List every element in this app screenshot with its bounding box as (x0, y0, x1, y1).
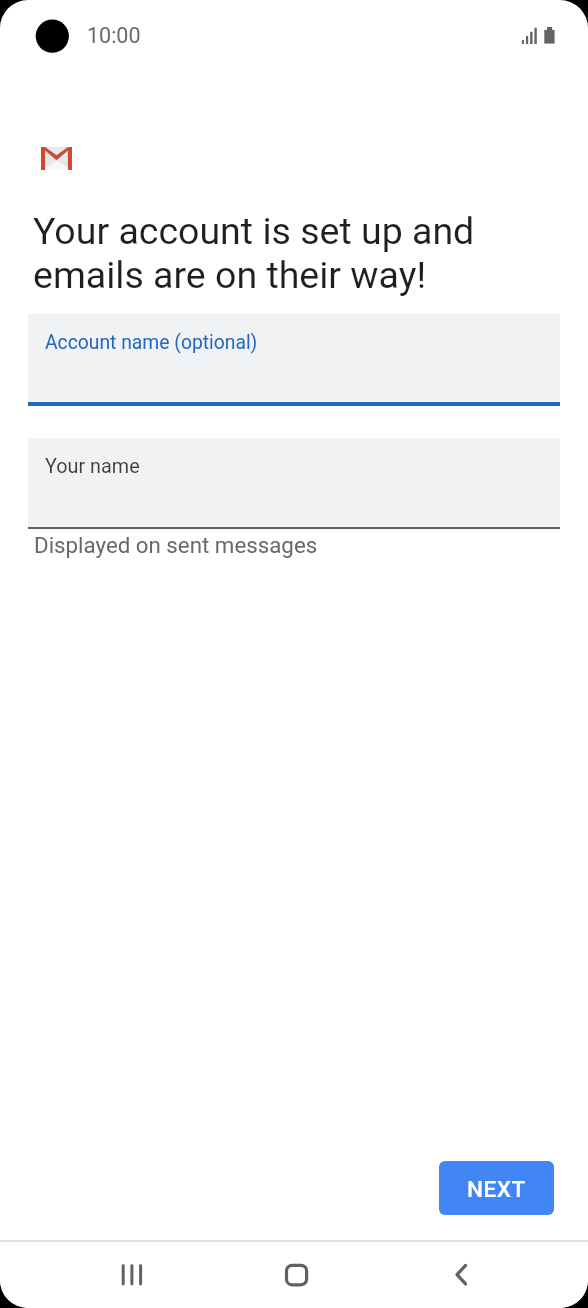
button[interactable]: Home (268, 1242, 324, 1308)
staticText: 10:00 (87, 23, 141, 48)
button[interactable]: NEXT (439, 1161, 554, 1215)
staticText: Your name (45, 455, 140, 478)
staticText: NEXT (467, 1176, 526, 1202)
button[interactable]: Recent apps (104, 1242, 160, 1308)
button[interactable]: Your name (28, 438, 560, 529)
staticText: Displayed on sent messages (34, 532, 318, 558)
staticText: Your account is set up and emails are on… (33, 209, 475, 297)
button[interactable]: Back (433, 1242, 489, 1308)
button[interactable]: Account name (optional) (28, 314, 560, 406)
staticText: Account name (optional) (45, 331, 258, 354)
